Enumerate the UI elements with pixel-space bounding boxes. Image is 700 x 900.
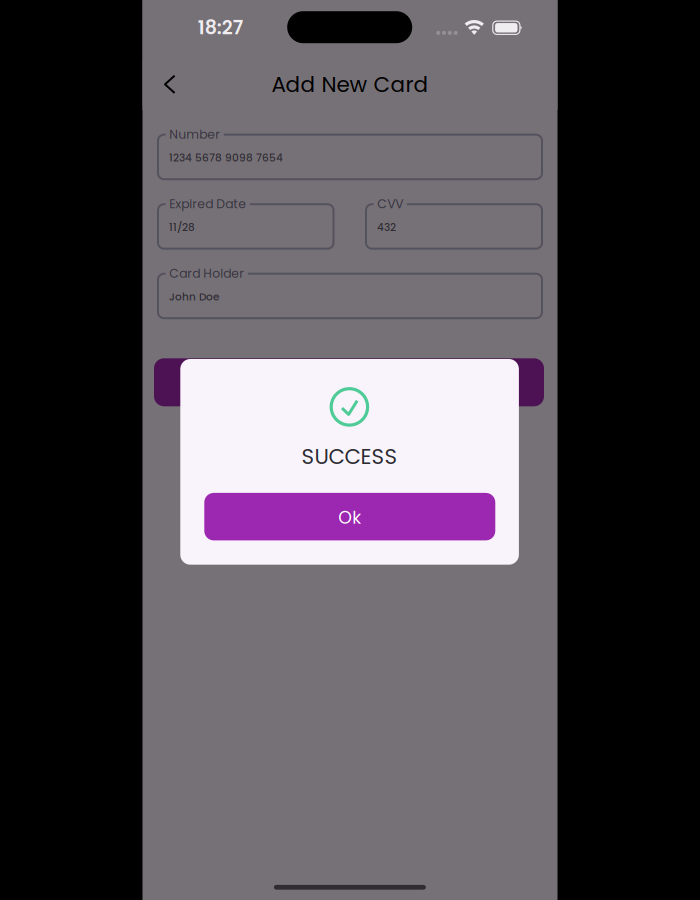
button[interactable]: John Doe: [158, 274, 542, 318]
button[interactable]: 11/28: [158, 204, 333, 249]
button[interactable]: Ok: [204, 493, 495, 540]
staticText: Ok: [338, 505, 361, 530]
staticText: 18:27: [198, 14, 243, 41]
button[interactable]: Add Card: [154, 358, 544, 406]
staticText: Card Holder: [169, 265, 244, 282]
staticText: Number: [169, 126, 220, 143]
staticText: Add Card: [307, 370, 391, 394]
staticText: Expired Date: [169, 195, 246, 213]
staticText: 11/28: [169, 220, 195, 235]
staticText: SUCCESS: [302, 442, 398, 471]
button[interactable]: 432: [366, 204, 542, 249]
button[interactable]: Back: [143, 61, 185, 105]
staticText: 432: [377, 220, 396, 235]
staticText: Add New Card: [271, 69, 428, 100]
button[interactable]: 1234 5678 9098 7654: [158, 135, 542, 179]
staticText: John Doe: [169, 289, 220, 304]
staticText: CVV: [377, 195, 403, 213]
staticText: 1234 5678 9098 7654: [169, 150, 283, 165]
